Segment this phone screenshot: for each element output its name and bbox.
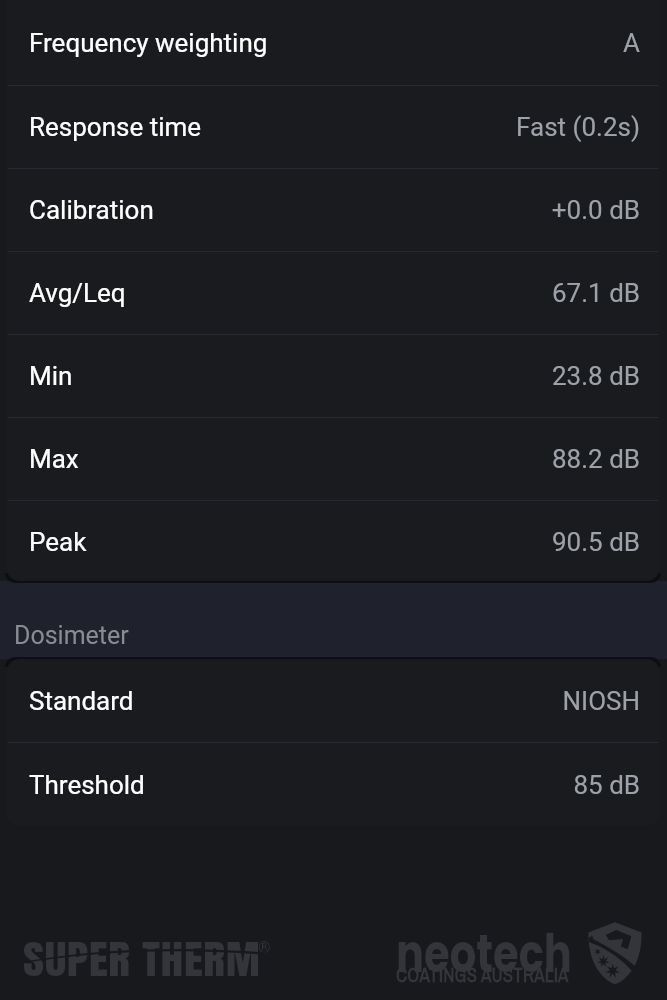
button[interactable]: Calibration: [6, 169, 660, 251]
staticText: Max: [29, 444, 79, 474]
staticText: A: [623, 28, 640, 58]
staticText: SUPER THERM: [23, 930, 260, 989]
staticText: ®: [258, 938, 271, 957]
staticText: Peak: [29, 527, 87, 557]
button[interactable]: Peak: [6, 501, 660, 581]
staticText: COATINGS AUSTRALIA: [396, 960, 569, 988]
staticText: NIOSH: [562, 686, 640, 716]
button[interactable]: Standard: [6, 659, 660, 742]
staticText: Standard: [29, 686, 134, 716]
button[interactable]: Avg/Leq: [6, 252, 660, 334]
button[interactable]: Response time: [6, 86, 660, 168]
staticText: Fast (0.2s): [516, 112, 640, 142]
staticText: 90.5 dB: [551, 527, 640, 557]
staticText: 23.8 dB: [551, 361, 640, 391]
staticText: neotech: [396, 917, 572, 990]
button[interactable]: Max: [6, 418, 660, 500]
staticText: Avg/Leq: [29, 278, 126, 308]
button[interactable]: Frequency weighting: [6, 0, 660, 85]
staticText: Response time: [29, 112, 202, 142]
staticText: Calibration: [29, 195, 154, 225]
staticText: Frequency weighting: [29, 28, 268, 58]
staticText: Min: [29, 361, 73, 391]
button[interactable]: Threshold: [6, 743, 660, 826]
staticText: Threshold: [29, 770, 145, 800]
button[interactable]: Min: [6, 335, 660, 417]
staticText: +0.0 dB: [551, 195, 640, 225]
staticText: 88.2 dB: [551, 444, 640, 474]
staticText: 67.1 dB: [551, 278, 640, 308]
staticText: Dosimeter: [14, 621, 129, 650]
staticText: 85 dB: [573, 770, 640, 800]
